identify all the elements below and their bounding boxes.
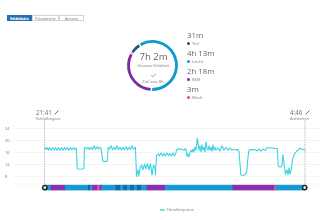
staticText: 12	[5, 162, 10, 167]
staticText: 20	[5, 138, 10, 143]
staticText: 2h 18m	[187, 66, 215, 77]
staticText: 4h 13m	[187, 48, 215, 59]
staticText: Pulsoximeter	[35, 16, 56, 21]
button[interactable]: Pulsoximeter	[32, 15, 59, 21]
staticText: 8	[5, 174, 8, 179]
staticText: Tief	[192, 41, 199, 46]
staticText: 7h 2m	[139, 50, 168, 63]
button[interactable]: 4h 13m	[187, 48, 215, 66]
staticText: Atmung	[65, 16, 78, 21]
staticText: 16	[5, 150, 10, 155]
button[interactable]: Schlafdaten	[7, 15, 32, 21]
staticText: Gesamte Schlafzeit	[137, 63, 170, 68]
button[interactable]: 3m	[187, 84, 203, 102]
staticText: 24	[5, 126, 10, 131]
button[interactable]: 31m	[187, 30, 204, 48]
staticText: Schlafbeginn	[36, 116, 61, 121]
staticText: Aufstehen	[290, 116, 310, 121]
staticText: Schlafdaten	[10, 16, 29, 21]
staticText: Leicht	[192, 59, 204, 64]
staticText: Wach	[192, 95, 203, 100]
staticText: Herzfrequenz	[167, 207, 194, 213]
button[interactable]: Aufstehen bearbeiten	[305, 110, 310, 115]
button[interactable]: 2h 18m	[187, 66, 215, 84]
staticText: 3m	[187, 84, 199, 95]
button[interactable]: Schlafbeginn bearbeiten	[54, 110, 59, 115]
staticText: Ziel von 8h	[142, 79, 164, 85]
staticText: 21:41	[36, 108, 52, 116]
button[interactable]: Herzfrequenz	[160, 207, 194, 213]
staticText: 31m	[187, 30, 204, 41]
button[interactable]: Atmung	[59, 15, 84, 21]
staticText: 4:46	[290, 108, 303, 116]
staticText: REM	[192, 77, 201, 82]
